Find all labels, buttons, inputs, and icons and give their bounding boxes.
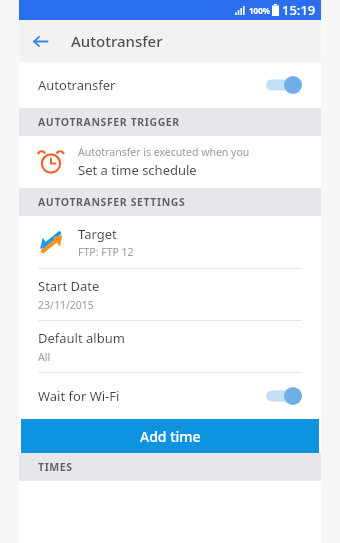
button[interactable]: Start Date [19, 269, 321, 320]
staticText: Set a time schedule [78, 161, 197, 179]
staticText: 100% [249, 5, 270, 16]
staticText: Wait for Wi-Fi [38, 387, 120, 405]
staticText: FTP: FTP 12 [78, 245, 134, 259]
staticText: Target [78, 225, 117, 243]
staticText: Autotransfer is executed when you [78, 145, 250, 159]
staticText: AUTOTRANSFER TRIGGER [38, 115, 180, 129]
staticText: TIMES [38, 460, 73, 474]
button[interactable]: Autotransfer [19, 62, 321, 108]
staticText: 23/11/2015 [38, 298, 94, 312]
button[interactable]: Back [19, 20, 61, 62]
staticText: AUTOTRANSFER SETTINGS [38, 195, 186, 209]
button[interactable]: Default album [19, 321, 321, 372]
staticText: Add time [140, 427, 201, 446]
staticText: Autotransfer [71, 31, 163, 51]
button[interactable]: Add time [21, 419, 319, 453]
staticText: Autotransfer [38, 76, 116, 94]
staticText: 15:19 [282, 1, 316, 19]
staticText: Start Date [38, 277, 100, 295]
staticText: Default album [38, 329, 125, 347]
button[interactable]: Wait for Wi-Fi [19, 373, 321, 419]
button[interactable]: Autotransfer is executed when you [19, 136, 321, 188]
button[interactable]: Target [19, 216, 321, 268]
staticText: All [38, 350, 51, 364]
